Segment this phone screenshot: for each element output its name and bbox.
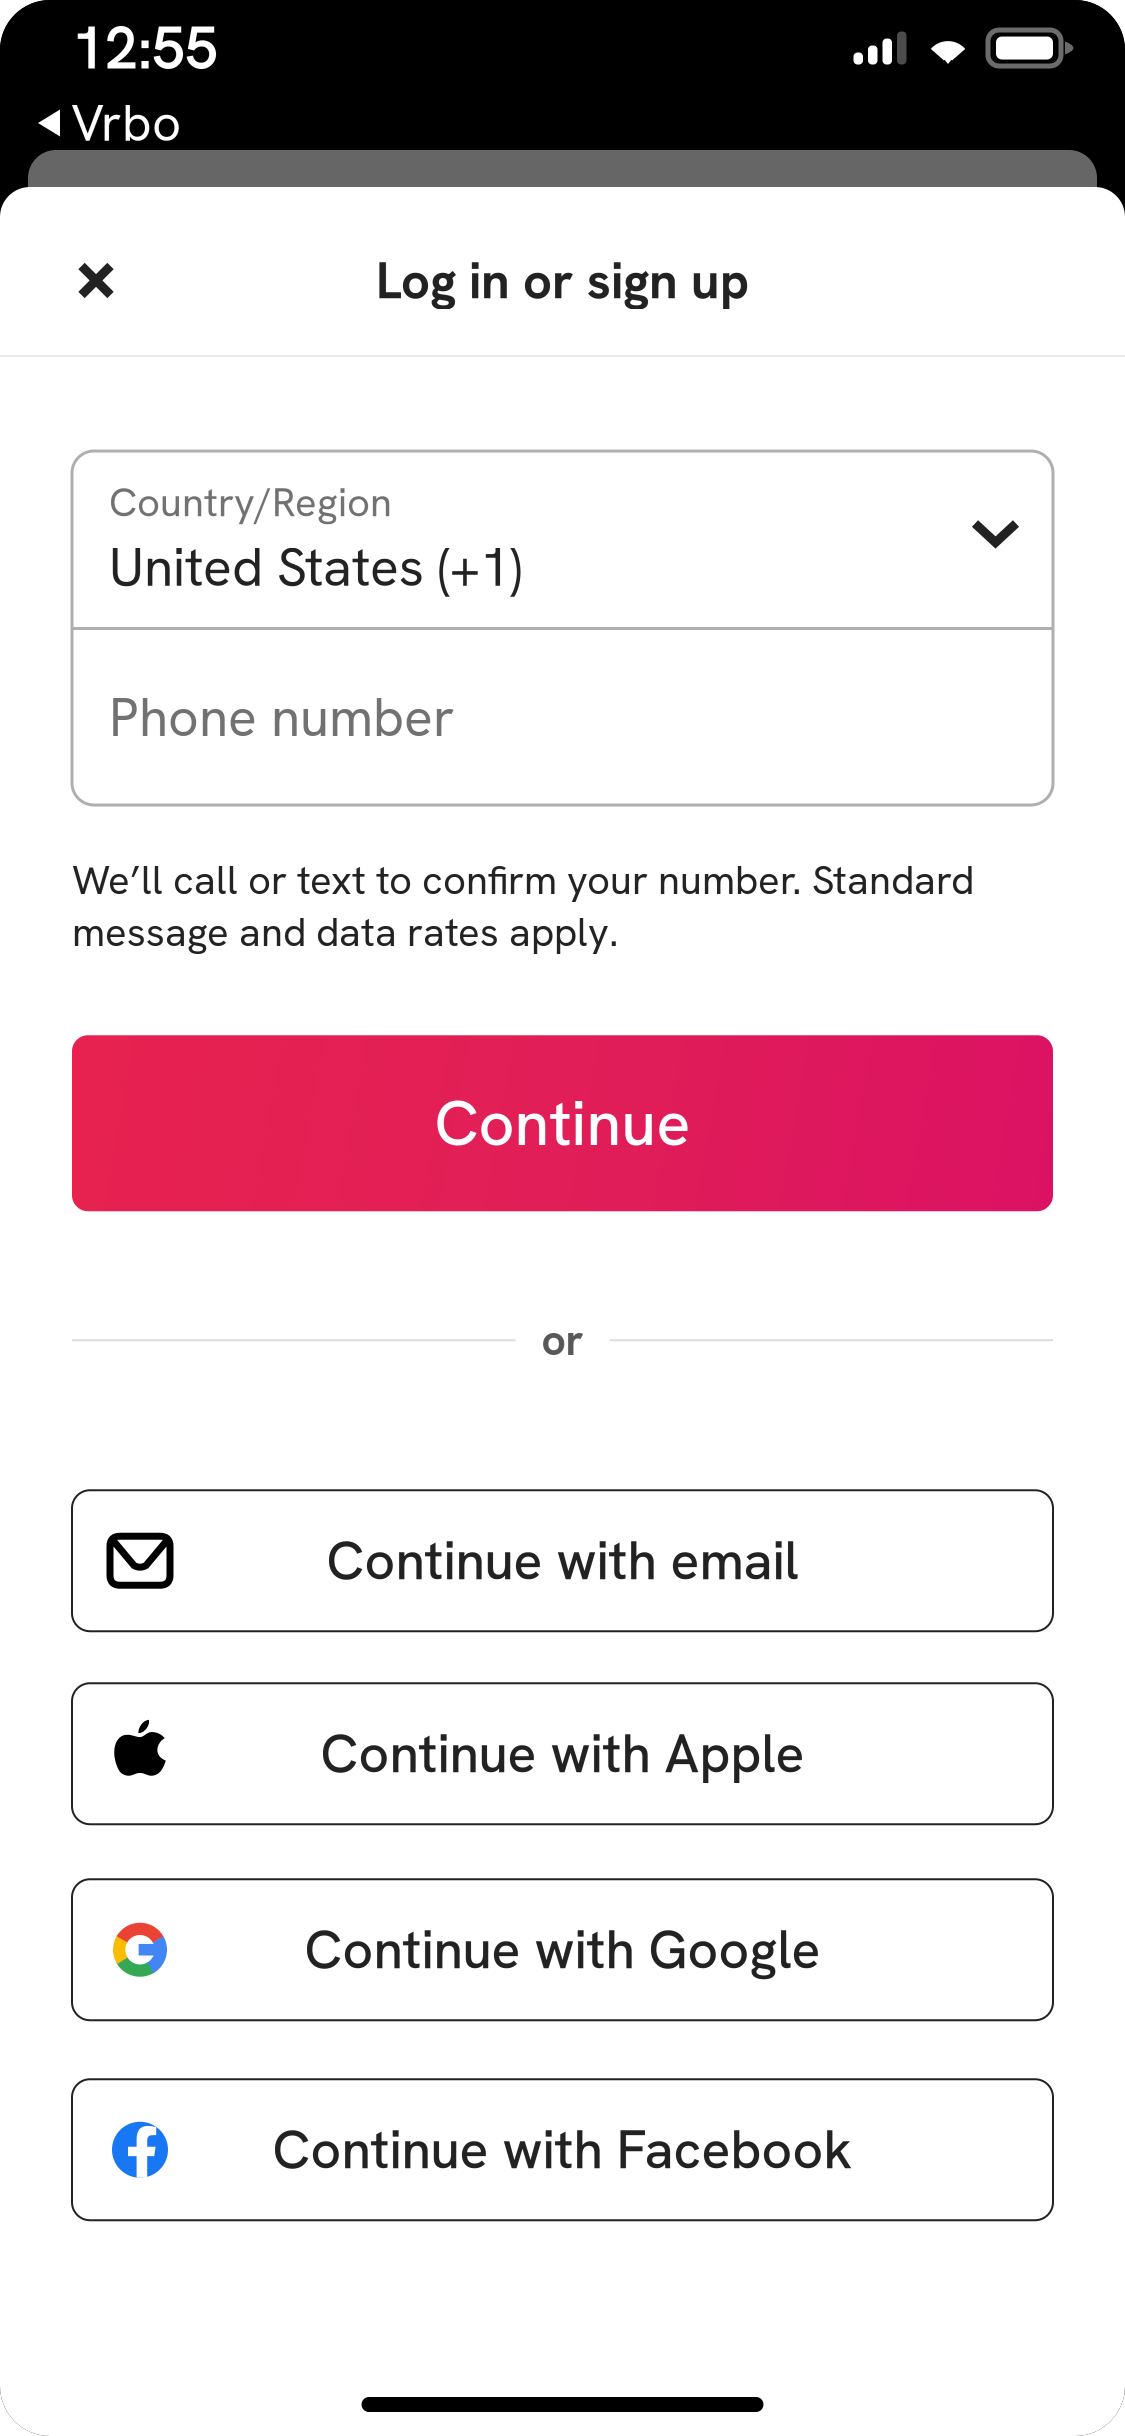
staticText: Continue: [434, 1082, 690, 1164]
staticText: 12:55: [72, 10, 218, 86]
staticText: Phone number: [109, 683, 455, 752]
staticText: United States (+1): [109, 532, 522, 602]
button[interactable]: Continue with Facebook: [72, 2079, 1053, 2220]
button[interactable]: Close: [48, 232, 144, 328]
button[interactable]: Continue with Apple: [72, 1683, 1053, 1824]
staticText: Log in or sign up: [376, 247, 749, 313]
button[interactable]: Country/Region: [72, 451, 1053, 627]
staticText: Continue with Apple: [320, 1719, 804, 1788]
staticText: Continue with email: [326, 1526, 798, 1595]
staticText: Vrbo: [71, 90, 181, 156]
button[interactable]: Continue: [72, 1035, 1053, 1211]
button[interactable]: Continue with Google: [72, 1879, 1053, 2020]
staticText: Continue with Facebook: [272, 2115, 852, 2184]
staticText: Country/Region: [109, 476, 392, 528]
button[interactable]: Continue with email: [72, 1490, 1053, 1631]
staticText: We’ll call or text to confirm your numbe…: [72, 854, 974, 958]
staticText: or: [541, 1312, 583, 1368]
staticText: Continue with Google: [304, 1915, 820, 1984]
